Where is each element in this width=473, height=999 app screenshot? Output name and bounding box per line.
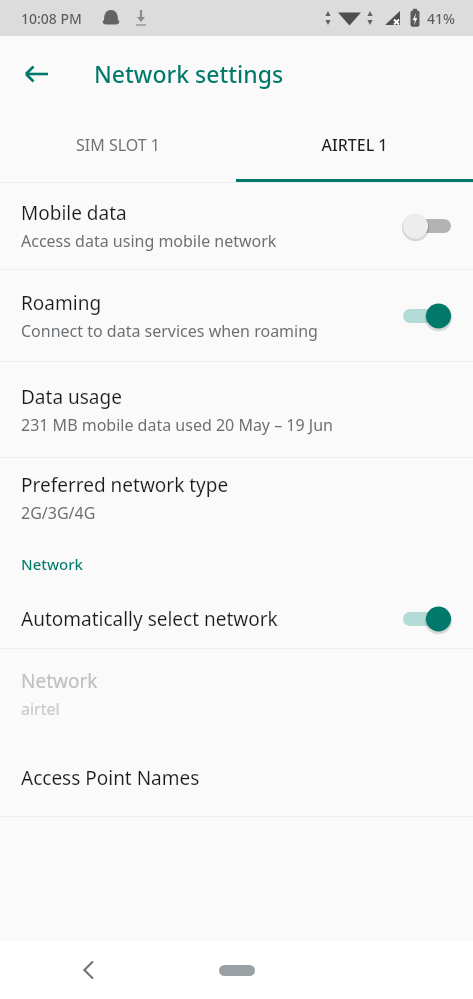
- staticText: AIRTEL 1: [321, 134, 388, 156]
- staticText: Data usage: [21, 384, 122, 410]
- staticText: Automatically select network: [21, 606, 278, 632]
- staticText: 41%: [427, 9, 455, 28]
- staticText: airtel: [21, 698, 60, 720]
- staticText: SIM SLOT 1: [76, 134, 160, 156]
- button[interactable]: Access Point Names: [0, 739, 473, 816]
- button[interactable]: Back: [66, 946, 114, 994]
- button[interactable]: Back: [9, 46, 65, 102]
- button[interactable]: Home: [219, 965, 255, 976]
- staticText: Preferred network type: [21, 472, 229, 498]
- button[interactable]: Preferred network type: [0, 458, 473, 537]
- staticText: Mobile data: [21, 200, 127, 226]
- button[interactable]: SIM SLOT 1: [0, 111, 236, 179]
- staticText: Network: [21, 554, 83, 574]
- staticText: Connect to data services when roaming: [21, 320, 318, 342]
- staticText: Roaming: [21, 290, 102, 316]
- staticText: Access data using mobile network: [21, 230, 277, 252]
- staticText: 2G/3G/4G: [21, 502, 96, 524]
- button[interactable]: Data usage: [0, 362, 473, 457]
- staticText: Network: [21, 668, 98, 694]
- staticText: 10:08 PM: [21, 9, 82, 28]
- staticText: 231 MB mobile data used 20 May – 19 Jun: [21, 414, 333, 436]
- staticText: Access Point Names: [21, 765, 200, 791]
- button[interactable]: Mobile data: [0, 183, 473, 269]
- button[interactable]: Automatically select network: [0, 590, 473, 648]
- button[interactable]: AIRTEL 1: [236, 111, 473, 179]
- button[interactable]: Network: [0, 649, 473, 739]
- staticText: Network settings: [94, 58, 284, 89]
- button[interactable]: Roaming: [0, 270, 473, 361]
